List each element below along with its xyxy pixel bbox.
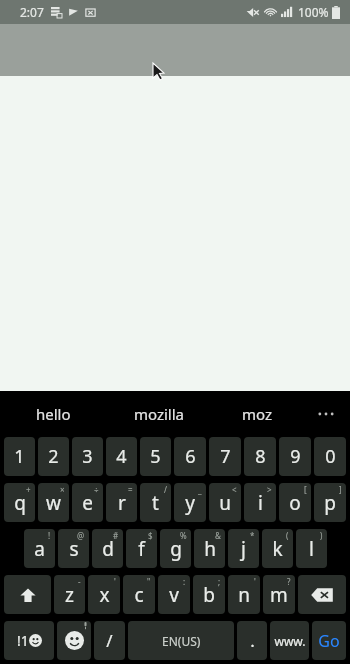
staticText: z [65, 582, 74, 608]
staticText: ÷ [94, 484, 99, 495]
button[interactable]: EN(US) [128, 621, 234, 660]
staticText: _ [198, 484, 202, 495]
button[interactable]: Symbols [4, 621, 54, 660]
staticText: ] [339, 484, 342, 495]
staticText: p [324, 490, 336, 516]
staticText: www. [274, 633, 306, 649]
button[interactable]: h [194, 529, 225, 568]
staticText: 9 [290, 444, 301, 469]
button[interactable]: 1 [4, 437, 35, 476]
button[interactable]: n [228, 575, 260, 614]
staticText: * [250, 530, 255, 541]
button[interactable]: 3 [72, 437, 103, 476]
staticText: f [138, 536, 145, 562]
staticText: 5 [150, 444, 161, 469]
button[interactable]: v [158, 575, 190, 614]
staticText: Go [318, 630, 340, 652]
staticText: ( [286, 530, 289, 541]
staticText: b [203, 582, 215, 608]
staticText: 1 [14, 444, 25, 469]
button[interactable]: e [72, 483, 103, 522]
button[interactable]: y [174, 483, 206, 522]
staticText: j [241, 536, 246, 562]
staticText: c [134, 582, 144, 608]
button[interactable]: w [38, 483, 69, 522]
staticText: = [128, 484, 133, 495]
button[interactable]: b [193, 575, 225, 614]
button[interactable]: . [237, 621, 267, 660]
staticText: [ [304, 484, 307, 495]
button[interactable]: 8 [244, 437, 276, 476]
staticText: 2 [48, 444, 59, 469]
button[interactable]: r [106, 483, 137, 522]
staticText: mozilla [134, 404, 185, 424]
button[interactable]: o [279, 483, 311, 522]
staticText: : [183, 576, 186, 587]
button[interactable]: f [126, 529, 157, 568]
button[interactable]: a [24, 529, 55, 568]
button[interactable]: u [209, 483, 241, 522]
staticText: r [118, 490, 126, 516]
staticText: 0 [325, 444, 336, 469]
staticText: × [60, 484, 65, 495]
button[interactable]: 7 [209, 437, 241, 476]
staticText: ' [254, 576, 256, 587]
staticText: < [232, 484, 237, 495]
staticText: % [180, 530, 187, 541]
staticText: !1 [17, 631, 29, 650]
button[interactable]: 9 [279, 437, 311, 476]
button[interactable]: i [244, 483, 276, 522]
button[interactable]: q [4, 483, 35, 522]
button[interactable]: p [314, 483, 346, 522]
button[interactable]: More suggestions [302, 391, 350, 437]
button[interactable]: Go [312, 621, 346, 660]
button[interactable]: 4 [106, 437, 137, 476]
button[interactable]: / [94, 621, 125, 660]
staticText: ) [320, 530, 323, 541]
button[interactable]: k [262, 529, 293, 568]
button[interactable]: z [54, 575, 85, 614]
staticText: x [99, 582, 110, 608]
staticText: n [238, 582, 250, 608]
staticText: w [46, 490, 61, 516]
staticText: i [258, 490, 263, 516]
button[interactable]: g [160, 529, 191, 568]
staticText: @ [77, 530, 85, 541]
button[interactable]: m [263, 575, 295, 614]
staticText: / [164, 484, 167, 495]
button[interactable]: j [228, 529, 259, 568]
button[interactable]: mozilla [106, 391, 212, 437]
staticText: $ [148, 530, 153, 541]
staticText: . [250, 629, 255, 652]
staticText: # [113, 530, 119, 541]
button[interactable]: Shift [4, 575, 51, 614]
button[interactable]: l [296, 529, 327, 568]
staticText: m [270, 582, 288, 608]
staticText: d [102, 536, 114, 562]
button[interactable]: 5 [140, 437, 171, 476]
button[interactable]: 0 [314, 437, 346, 476]
staticText: g [170, 536, 182, 562]
staticText: + [26, 484, 31, 495]
button[interactable]: c [123, 575, 155, 614]
button[interactable]: www. [270, 621, 309, 660]
button[interactable]: Emoji [57, 621, 91, 660]
staticText: hello [36, 404, 71, 424]
button[interactable]: x [88, 575, 120, 614]
staticText: 100% [298, 4, 329, 20]
button[interactable]: d [92, 529, 123, 568]
button[interactable]: hello [0, 391, 106, 437]
staticText: ! [48, 530, 51, 541]
staticText: ; [218, 576, 221, 587]
button[interactable]: moz [212, 391, 302, 437]
staticText: ' [114, 576, 116, 587]
button[interactable]: 6 [174, 437, 206, 476]
staticText: 7 [220, 444, 231, 469]
staticText: u [219, 490, 231, 516]
staticText: moz [242, 404, 273, 424]
button[interactable]: Backspace [298, 575, 346, 614]
button[interactable]: 2 [38, 437, 69, 476]
button[interactable]: s [58, 529, 89, 568]
staticText: t [152, 490, 159, 516]
button[interactable]: t [140, 483, 171, 522]
